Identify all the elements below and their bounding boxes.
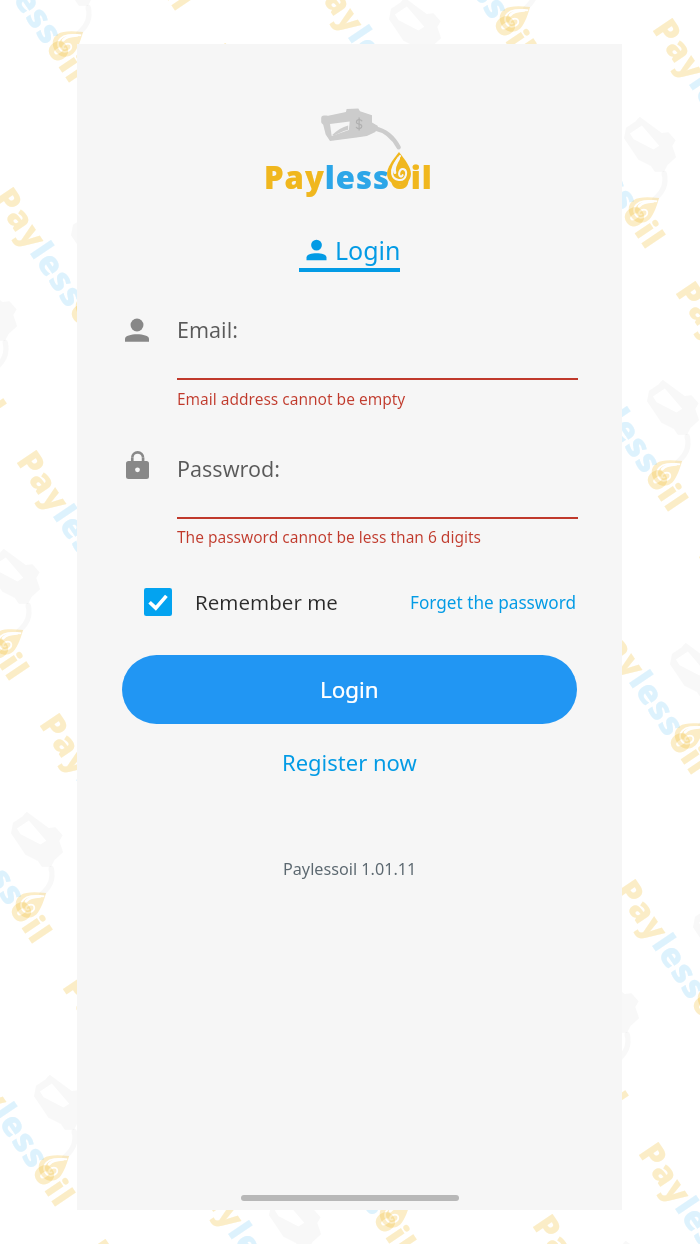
staticText: Paylessoil	[242, 560, 381, 736]
staticText: Login	[335, 233, 401, 267]
staticText: Paylessoil 1.01.11	[283, 858, 417, 880]
button[interactable]: Login	[122, 655, 577, 724]
staticText: Email address cannot be empty	[177, 388, 406, 409]
staticText: Paylessoil	[0, 178, 123, 354]
button[interactable]: Login	[304, 233, 401, 267]
staticText: Paylessoil	[0, 250, 17, 426]
staticText: Paylessoil	[30, 704, 169, 880]
staticText: Paylessoil	[264, 156, 433, 198]
staticText: Paylessoil	[265, 823, 404, 999]
staticText: Login	[320, 674, 379, 705]
staticText: Paylessoil	[67, 0, 206, 19]
staticText: Paylessoil	[113, 369, 252, 545]
staticText: Paylessoil	[53, 967, 192, 1143]
staticText: Paylessoil	[643, 9, 700, 185]
staticText: Paylessoil	[523, 1205, 662, 1244]
staticText: The password cannot be less than 6 digit…	[177, 526, 481, 547]
staticText: Paylessoil	[0, 0, 100, 91]
staticText: Paylessoil	[408, 0, 547, 66]
staticText: Paylessoil	[219, 297, 358, 473]
staticText: Paylessoil	[0, 1039, 86, 1215]
staticText: Paylessoil	[537, 81, 676, 257]
staticText: Paylessoil	[325, 225, 464, 401]
staticText: Paylessoil	[500, 942, 639, 1118]
button[interactable]: Remember me	[144, 588, 338, 616]
staticText: Paylessoil	[371, 751, 510, 927]
staticText: Paylessoil	[76, 1230, 215, 1244]
staticText: Paylessoil	[302, 0, 441, 138]
staticText: Paylessoil	[666, 272, 700, 448]
staticText: Paylessoil	[629, 1133, 700, 1244]
button[interactable]: Register now	[276, 741, 423, 783]
staticText: Paylessoil	[560, 344, 699, 520]
staticText: Paylessoil	[606, 870, 700, 1046]
staticText: Paylessoil	[288, 1086, 427, 1244]
staticText: Remember me	[195, 588, 338, 616]
staticText: Passwrod:	[177, 454, 281, 483]
button[interactable]: Forget the password	[410, 591, 622, 614]
staticText: Paylessoil	[454, 416, 593, 592]
staticText: Paylessoil	[348, 488, 487, 664]
staticText: Email:	[177, 315, 238, 344]
staticText: Paylessoil	[583, 607, 700, 783]
staticText: Paylessoil	[182, 1158, 321, 1244]
staticText: Paylessoil	[0, 776, 63, 952]
staticText: Paylessoil	[7, 441, 146, 617]
staticText: Paylessoil	[136, 632, 275, 808]
staticText: Paylessoil	[0, 513, 40, 689]
staticText: Paylessoil	[477, 679, 616, 855]
staticText: Paylessoil	[196, 34, 335, 210]
